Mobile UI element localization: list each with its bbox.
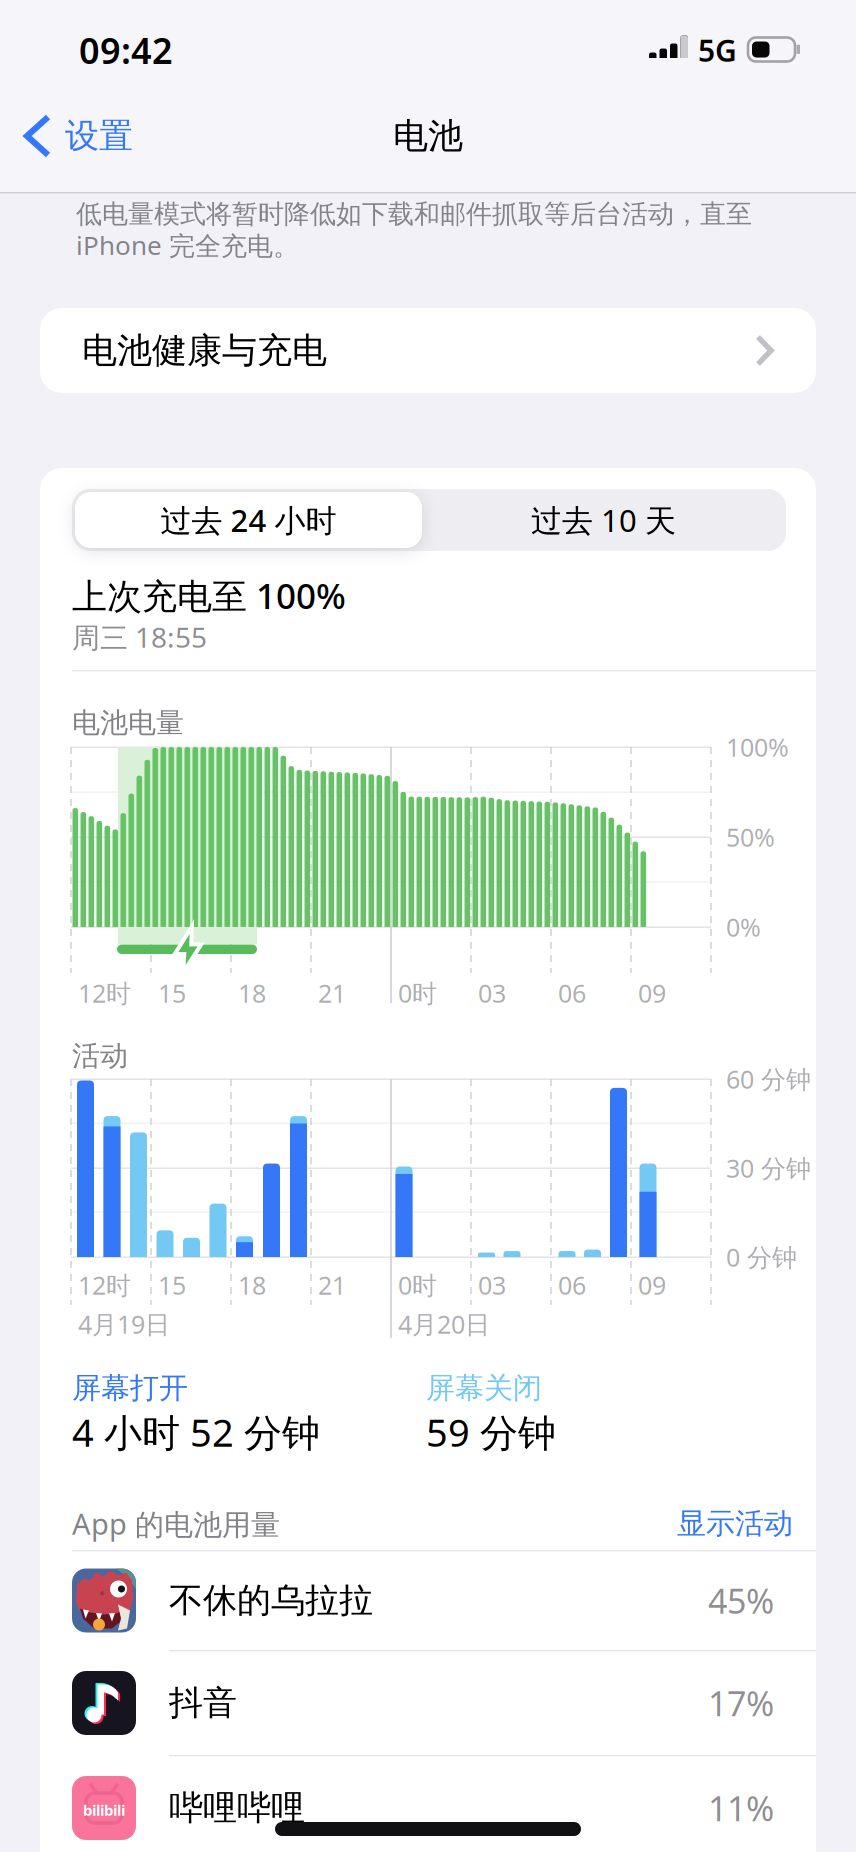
staticText: 0时 xyxy=(398,976,437,1010)
staticText: 18 xyxy=(238,976,266,1010)
staticText: 活动 xyxy=(72,1038,128,1074)
staticText: 06 xyxy=(558,976,586,1010)
staticText: 17% xyxy=(708,1680,774,1726)
staticText: 屏幕打开 xyxy=(72,1370,188,1406)
staticText: 45% xyxy=(708,1577,774,1624)
button[interactable]: 过去 24 小时 xyxy=(75,492,422,548)
staticText: 03 xyxy=(478,1268,506,1302)
button[interactable]: 抖音 xyxy=(40,1651,816,1755)
staticText: 0 分钟 xyxy=(726,1240,797,1274)
staticText: 4 小时 52 分钟 xyxy=(72,1406,320,1458)
staticText: 03 xyxy=(478,976,506,1010)
staticText: 18 xyxy=(238,1268,266,1302)
staticText: 4月20日 xyxy=(398,1307,490,1341)
staticText: 4月19日 xyxy=(78,1307,170,1341)
staticText: 09 xyxy=(638,1268,666,1302)
staticText: 59 分钟 xyxy=(426,1406,556,1458)
staticText: 电池健康与充电 xyxy=(82,328,327,373)
staticText: 50% xyxy=(726,820,775,854)
staticText: 低电量模式将暂时降低如下载和邮件抓取等后台活动，直至 xyxy=(76,198,752,230)
staticText: 设置 xyxy=(65,115,133,157)
staticText: 哔哩哔哩 xyxy=(169,1787,305,1829)
staticText: 12时 xyxy=(78,1268,131,1302)
staticText: 09 xyxy=(638,976,666,1010)
staticText: 过去 10 天 xyxy=(531,499,676,541)
staticText: 周三 18:55 xyxy=(72,618,207,656)
staticText: 0% xyxy=(726,910,761,944)
button[interactable]: 电池健康与充电 xyxy=(40,308,816,393)
button[interactable]: 不休的乌拉拉 xyxy=(40,1551,816,1650)
staticText: 显示活动 xyxy=(677,1505,793,1542)
button[interactable]: 显示活动 xyxy=(633,1508,793,1539)
staticText: 电池电量 xyxy=(72,705,184,741)
staticText: 11% xyxy=(708,1785,774,1831)
staticText: 5G xyxy=(698,30,737,70)
staticText: 过去 24 小时 xyxy=(160,499,336,541)
staticText: 抖音 xyxy=(169,1682,237,1724)
staticText: 21 xyxy=(318,976,346,1010)
staticText: 06 xyxy=(558,1268,586,1302)
staticText: 不休的乌拉拉 xyxy=(169,1579,373,1622)
staticText: bilibili xyxy=(83,1800,125,1820)
staticText: 上次充电至 100% xyxy=(72,572,346,619)
staticText: 屏幕关闭 xyxy=(426,1370,542,1406)
button[interactable]: 设置 xyxy=(27,108,187,164)
staticText: 15 xyxy=(158,1268,186,1302)
staticText: 30 分钟 xyxy=(726,1151,811,1185)
staticText: 09:42 xyxy=(79,25,173,74)
staticText: 100% xyxy=(726,730,789,764)
staticText: iPhone 完全充电。 xyxy=(76,227,299,263)
staticText: 12时 xyxy=(78,976,131,1010)
staticText: 60 分钟 xyxy=(726,1062,811,1096)
staticText: 15 xyxy=(158,976,186,1010)
button[interactable]: 过去 10 天 xyxy=(430,492,777,548)
staticText: App 的电池用量 xyxy=(72,1504,280,1543)
staticText: 0时 xyxy=(398,1268,437,1302)
staticText: 电池 xyxy=(393,114,463,158)
staticText: 21 xyxy=(318,1268,346,1302)
button[interactable]: bilibili xyxy=(40,1756,816,1852)
